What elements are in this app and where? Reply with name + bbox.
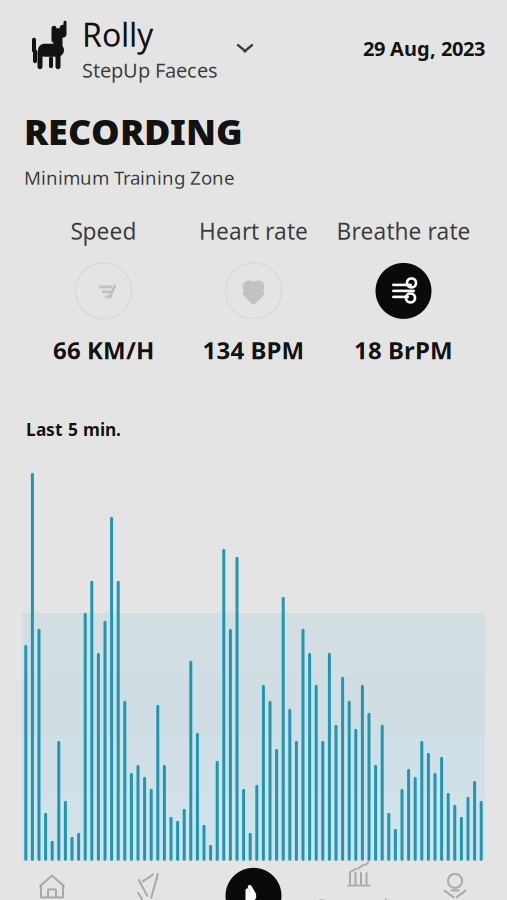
staticText: 66 KM/H — [53, 334, 154, 366]
staticText: Comparison — [314, 892, 403, 900]
staticText: 18 BrPM — [354, 334, 453, 366]
staticText: Last 5 min. — [26, 418, 121, 441]
button[interactable]: Comparison — [311, 871, 407, 900]
staticText: RECORDING — [24, 107, 243, 155]
staticText: Breathe rate — [336, 216, 470, 246]
button[interactable]: Home — [4, 871, 100, 900]
button[interactable]: Heart rate — [178, 216, 328, 366]
button[interactable]: Overview — [100, 871, 196, 900]
staticText: Rolly — [82, 13, 153, 56]
staticText: 134 BPM — [202, 334, 304, 366]
button[interactable]: Account — [407, 871, 503, 900]
staticText: Minimum Training Zone — [24, 165, 235, 190]
staticText: Heart rate — [199, 216, 308, 246]
staticText: StepUp Faeces — [82, 57, 218, 83]
button[interactable]: Speed — [28, 216, 178, 366]
staticText: Speed — [70, 216, 136, 246]
button[interactable]: Breathe rate — [328, 216, 478, 366]
staticText: 29 Aug, 2023 — [363, 35, 485, 61]
button[interactable]: Start recording — [223, 866, 283, 900]
button[interactable]: Rolly — [22, 11, 256, 85]
